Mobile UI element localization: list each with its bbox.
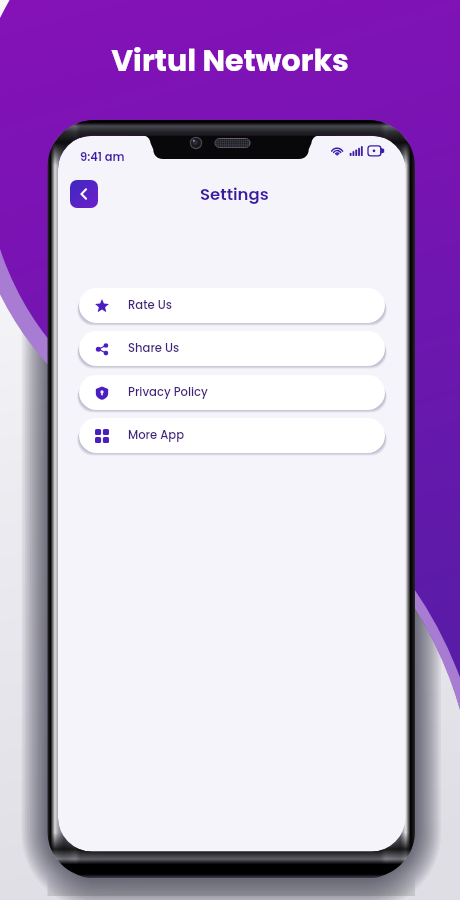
- staticText: Share Us: [128, 340, 180, 356]
- staticText: 9:41 am: [80, 149, 125, 165]
- button[interactable]: Back: [70, 180, 98, 208]
- staticText: Privacy Policy: [128, 384, 208, 400]
- staticText: Settings: [200, 183, 269, 206]
- button[interactable]: Rate Us: [79, 288, 385, 323]
- button[interactable]: Privacy Policy: [79, 375, 385, 410]
- staticText: More App: [128, 427, 185, 443]
- staticText: Virtul Networks: [111, 40, 349, 82]
- button[interactable]: More App: [79, 418, 385, 453]
- button[interactable]: Share Us: [79, 331, 385, 366]
- staticText: Rate Us: [128, 297, 172, 313]
